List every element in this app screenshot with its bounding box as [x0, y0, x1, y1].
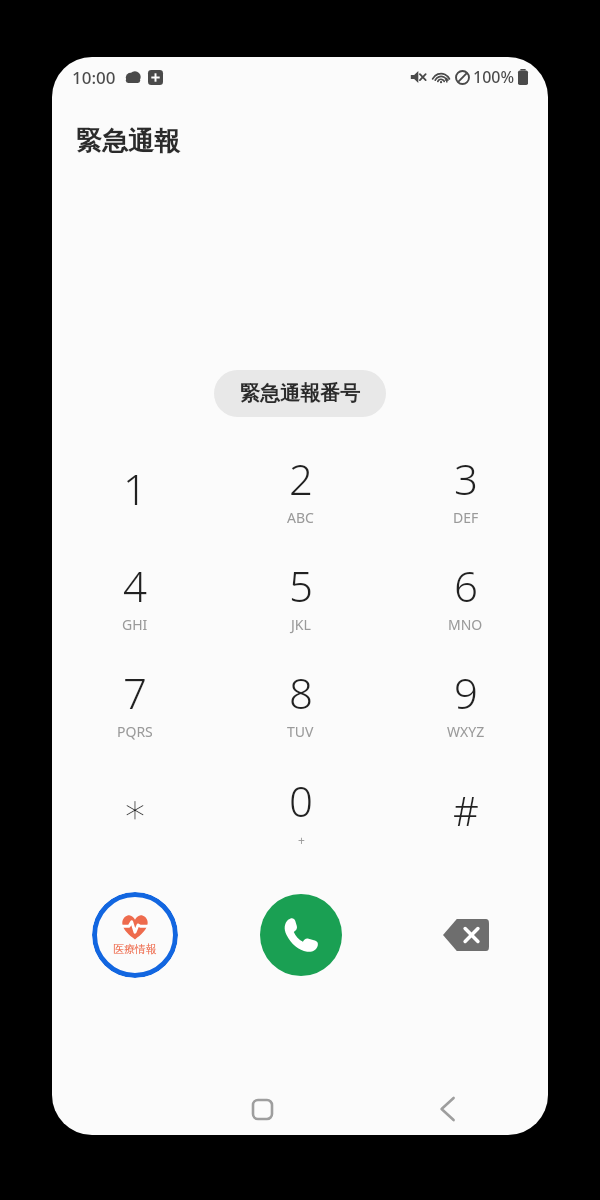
button[interactable]: 医療情報 [92, 892, 178, 978]
staticText: 緊急通報番号 [240, 381, 360, 406]
staticText: 緊急通報 [76, 125, 180, 158]
button[interactable]: 2 [218, 435, 383, 542]
button[interactable]: 1 [52, 435, 218, 542]
staticText: DEF [453, 508, 479, 527]
button[interactable]: 4 [52, 542, 218, 649]
staticText: WXYZ [447, 722, 485, 741]
staticText: + [298, 832, 305, 848]
button[interactable]: 7 [52, 649, 218, 756]
button[interactable]: Backspace [428, 907, 504, 963]
button[interactable]: Back [424, 1085, 472, 1133]
staticText: 5 [289, 557, 313, 614]
button[interactable]: 0 [218, 756, 383, 863]
button[interactable]: Home [238, 1085, 286, 1133]
staticText: 6 [454, 557, 478, 614]
staticText: 9 [454, 664, 478, 721]
staticText: 2 [289, 450, 313, 507]
staticText: JKL [291, 615, 311, 634]
staticText: GHI [122, 615, 148, 634]
staticText: 10:00 [72, 66, 116, 89]
button[interactable]: 9 [383, 649, 548, 756]
staticText: TUV [287, 722, 314, 741]
staticText: 7 [123, 664, 147, 721]
button[interactable]: ∗ [52, 756, 218, 863]
staticText: ∗ [122, 786, 148, 833]
staticText: PQRS [117, 722, 153, 741]
staticText: 医療情報 [113, 942, 157, 956]
button[interactable]: 8 [218, 649, 383, 756]
staticText: 0 [289, 772, 313, 829]
staticText: 4 [123, 557, 147, 614]
button[interactable]: # [383, 756, 548, 863]
staticText: 100% [473, 66, 515, 88]
staticText: 8 [289, 664, 313, 721]
staticText: 1 [123, 460, 147, 517]
button[interactable]: Call [260, 894, 342, 976]
button[interactable]: 緊急通報番号 [214, 370, 386, 417]
button[interactable]: 5 [218, 542, 383, 649]
staticText: 3 [454, 450, 478, 507]
button[interactable]: 3 [383, 435, 548, 542]
button[interactable]: 6 [383, 542, 548, 649]
staticText: ABC [287, 508, 314, 527]
staticText: MNO [448, 615, 483, 634]
staticText: # [453, 783, 479, 837]
